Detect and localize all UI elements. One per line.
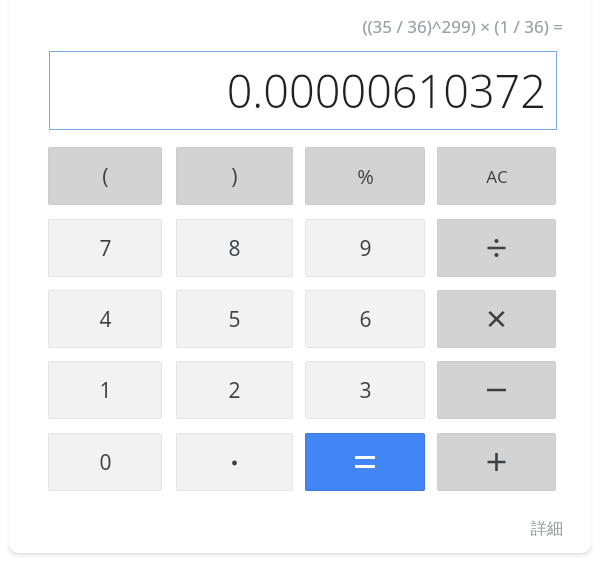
staticText: 3	[359, 376, 372, 405]
staticText: %	[357, 163, 374, 190]
staticText: 8	[228, 234, 241, 263]
button[interactable]: (	[48, 147, 162, 205]
button[interactable]: 1	[48, 361, 162, 419]
button[interactable]: 4	[48, 290, 162, 348]
button[interactable]: )	[176, 147, 293, 205]
staticText: 9	[359, 234, 372, 263]
staticText: 0.00000610372	[226, 60, 546, 121]
button[interactable]: 詳細	[505, 514, 563, 544]
staticText: 詳細	[531, 519, 563, 539]
staticText: 1	[99, 376, 112, 405]
button[interactable]: Minus	[437, 361, 556, 419]
button[interactable]: %	[305, 147, 425, 205]
button[interactable]: Divide	[437, 219, 556, 277]
button[interactable]: AC	[437, 147, 556, 205]
button[interactable]: Decimal point	[176, 433, 293, 491]
staticText: 6	[359, 305, 372, 334]
button[interactable]: Plus	[437, 433, 556, 491]
button[interactable]: 9	[305, 219, 425, 277]
button[interactable]: 0.00000610372	[49, 51, 557, 130]
staticText: 2	[228, 376, 241, 405]
staticText: 7	[99, 234, 112, 263]
staticText: AC	[486, 165, 508, 188]
staticText: 0	[99, 448, 112, 477]
staticText: 5	[228, 305, 241, 334]
button[interactable]: 7	[48, 219, 162, 277]
button[interactable]: 0	[48, 433, 162, 491]
staticText: 4	[99, 305, 112, 334]
button[interactable]: 6	[305, 290, 425, 348]
button[interactable]: 5	[176, 290, 293, 348]
staticText: (	[102, 162, 109, 191]
button[interactable]: Multiply	[437, 290, 556, 348]
button[interactable]: 3	[305, 361, 425, 419]
staticText: )	[231, 162, 238, 191]
button[interactable]: Equals	[305, 433, 425, 491]
button[interactable]: 8	[176, 219, 293, 277]
staticText: ((35 / 36)^299) × (1 / 36) =	[362, 15, 563, 38]
button[interactable]: 2	[176, 361, 293, 419]
